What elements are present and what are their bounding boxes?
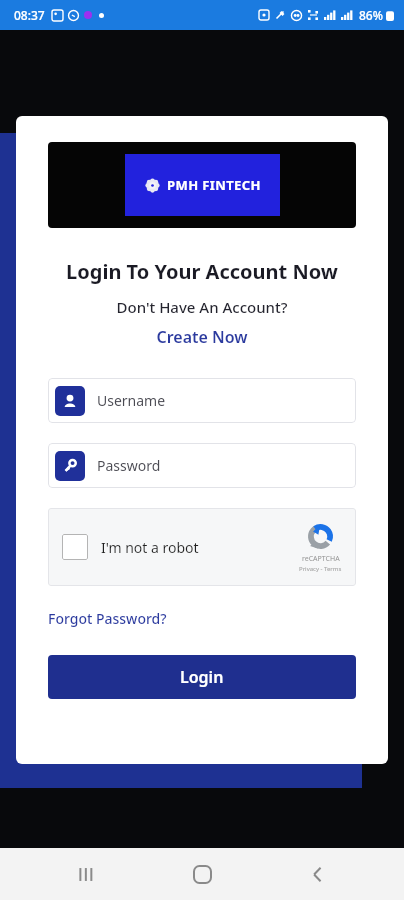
button[interactable]: Home (174, 848, 230, 900)
button[interactable]: Username (48, 378, 356, 423)
button[interactable]: Forgot Password? (48, 609, 167, 628)
staticText: Username (97, 391, 166, 410)
staticText: I'm not a robot (101, 538, 199, 557)
staticText: Don't Have An Account? (48, 297, 356, 317)
staticText: reCAPTCHA (302, 554, 340, 564)
staticText: PMH FINTECH (167, 176, 261, 194)
staticText: Login To Your Account Now (48, 258, 356, 285)
button[interactable]: Back (289, 848, 345, 900)
staticText: Privacy - Terms (299, 565, 342, 573)
button[interactable]: Recent apps (59, 848, 115, 900)
button[interactable]: Password (48, 443, 356, 488)
button[interactable]: Create Now (48, 326, 356, 348)
button[interactable]: I'm not a robot (48, 508, 356, 586)
staticText: Password (97, 456, 161, 475)
staticText: 86% (359, 7, 383, 23)
button[interactable]: Login (48, 655, 356, 699)
staticText: Login (180, 666, 224, 688)
staticText: 08:37 (14, 7, 45, 23)
staticText: Create Now (48, 326, 356, 348)
staticText: Forgot Password? (48, 609, 167, 628)
